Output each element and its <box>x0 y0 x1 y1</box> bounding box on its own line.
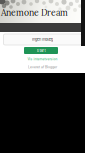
staticText: Anemone Dream <box>1 7 68 18</box>
staticText: Vis internetversion <box>27 57 57 61</box>
button[interactable]: Vis internetversion <box>0 57 85 61</box>
staticText: Leveret af Blogger <box>28 65 57 69</box>
staticText: Ingen indlæg <box>32 37 53 42</box>
staticText: Start <box>36 48 45 53</box>
button[interactable]: Start <box>24 47 58 54</box>
